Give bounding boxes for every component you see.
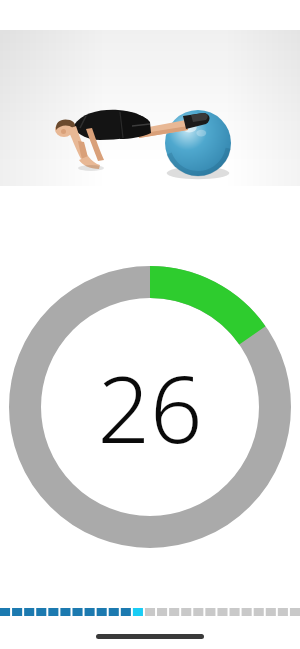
- button[interactable]: Workout progress: [0, 606, 300, 618]
- staticText: 26: [97, 345, 203, 470]
- button[interactable]: Exercise demonstration: [0, 30, 300, 186]
- button[interactable]: Rep counter, 26 remaining: [9, 266, 291, 548]
